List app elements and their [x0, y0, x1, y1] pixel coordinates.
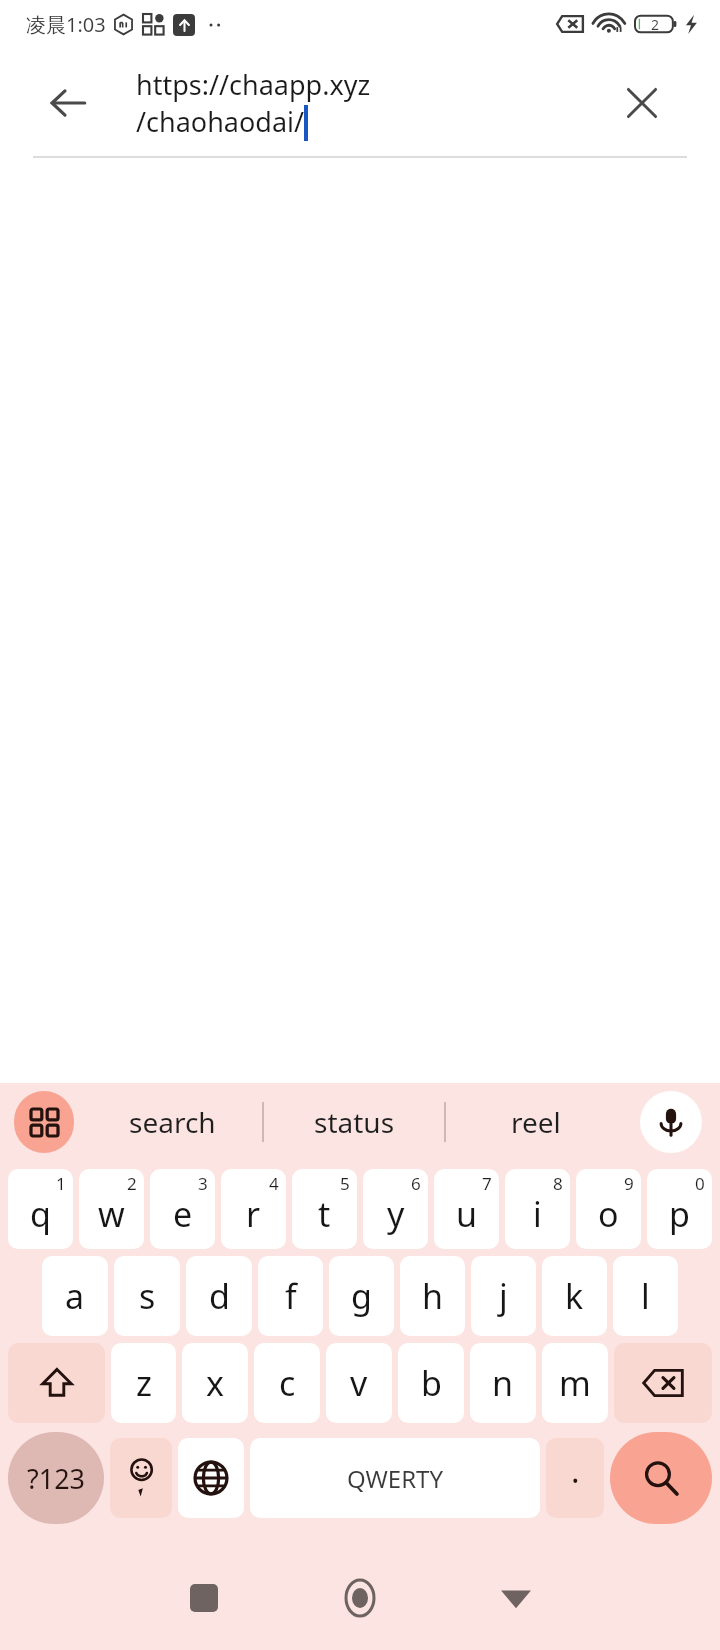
- button[interactable]: Search: [610, 1432, 712, 1524]
- staticText: n: [492, 1360, 514, 1406]
- button[interactable]: g: [329, 1256, 394, 1336]
- staticText: e: [173, 1191, 193, 1237]
- staticText: w: [98, 1191, 125, 1237]
- staticText: v: [350, 1360, 368, 1406]
- staticText: reel: [511, 1103, 561, 1141]
- button[interactable]: reel: [446, 1083, 626, 1161]
- button[interactable]: Home: [322, 1560, 398, 1636]
- staticText: p: [669, 1191, 690, 1237]
- button[interactable]: n: [470, 1343, 536, 1423]
- staticText: 1: [56, 1172, 66, 1195]
- button[interactable]: j: [471, 1256, 536, 1336]
- staticText: b: [421, 1360, 442, 1406]
- staticText: 3: [198, 1172, 208, 1195]
- staticText: z: [136, 1360, 152, 1406]
- staticText: 9: [624, 1172, 634, 1195]
- staticText: 8: [553, 1172, 563, 1195]
- staticText: h: [422, 1273, 444, 1319]
- staticText: i: [533, 1191, 542, 1237]
- button[interactable]: search: [82, 1083, 262, 1161]
- button[interactable]: Back: [478, 1560, 554, 1636]
- staticText: f: [285, 1273, 297, 1319]
- staticText: 2: [651, 15, 660, 34]
- staticText: g: [351, 1273, 372, 1319]
- button[interactable]: s: [114, 1256, 180, 1336]
- button[interactable]: h: [400, 1256, 465, 1336]
- staticText: status: [314, 1103, 395, 1141]
- button[interactable]: k: [542, 1256, 607, 1336]
- button[interactable]: ?123: [8, 1432, 104, 1524]
- button[interactable]: Shift: [8, 1343, 105, 1423]
- button[interactable]: r: [221, 1169, 286, 1249]
- staticText: .: [571, 1449, 580, 1493]
- staticText: s: [139, 1273, 156, 1319]
- staticText: o: [598, 1191, 619, 1237]
- button[interactable]: d: [186, 1256, 252, 1336]
- staticText: c: [279, 1360, 296, 1406]
- staticText: r: [246, 1191, 261, 1237]
- staticText: y: [387, 1191, 405, 1237]
- button[interactable]: .: [546, 1438, 604, 1518]
- button[interactable]: Emoji: [110, 1438, 172, 1518]
- button[interactable]: t: [292, 1169, 357, 1249]
- staticText: a: [65, 1273, 85, 1319]
- button[interactable]: i: [505, 1169, 570, 1249]
- button[interactable]: Back: [36, 71, 100, 135]
- staticText: l: [641, 1273, 650, 1319]
- staticText: q: [30, 1191, 51, 1237]
- button[interactable]: f: [258, 1256, 323, 1336]
- button[interactable]: Keyboard apps: [14, 1091, 74, 1153]
- button[interactable]: v: [326, 1343, 392, 1423]
- button[interactable]: b: [398, 1343, 464, 1423]
- button[interactable]: y: [363, 1169, 428, 1249]
- button[interactable]: u: [434, 1169, 499, 1249]
- button[interactable]: m: [542, 1343, 608, 1423]
- staticText: 0: [695, 1172, 705, 1195]
- staticText: 凌晨1:03: [26, 11, 106, 38]
- button[interactable]: a: [42, 1256, 108, 1336]
- button[interactable]: Clear: [612, 73, 672, 133]
- staticText: 4: [269, 1172, 279, 1195]
- staticText: 5: [340, 1172, 350, 1195]
- staticText: /chaohaodai/: [136, 103, 305, 140]
- button[interactable]: Recents: [166, 1560, 242, 1636]
- button[interactable]: p: [647, 1169, 712, 1249]
- button[interactable]: l: [613, 1256, 678, 1336]
- staticText: t: [318, 1191, 331, 1237]
- button[interactable]: Backspace: [614, 1343, 712, 1423]
- button[interactable]: z: [111, 1343, 176, 1423]
- staticText: ?123: [27, 1460, 86, 1497]
- staticText: search: [129, 1103, 216, 1141]
- staticText: m: [559, 1360, 591, 1406]
- button[interactable]: c: [254, 1343, 320, 1423]
- staticText: k: [565, 1273, 584, 1319]
- staticText: QWERTY: [347, 1462, 444, 1495]
- staticText: j: [499, 1273, 508, 1319]
- staticText: u: [456, 1191, 478, 1237]
- staticText: 7: [482, 1172, 492, 1195]
- button[interactable]: q: [8, 1169, 73, 1249]
- button[interactable]: Change keyboard language: [178, 1438, 244, 1518]
- button[interactable]: w: [79, 1169, 144, 1249]
- button[interactable]: status: [264, 1083, 444, 1161]
- button[interactable]: Voice input: [640, 1091, 702, 1153]
- button[interactable]: e: [150, 1169, 215, 1249]
- staticText: d: [209, 1273, 230, 1319]
- staticText: https://chaapp.xyz: [136, 66, 371, 103]
- staticText: 2: [127, 1172, 137, 1195]
- staticText: 6: [411, 1172, 421, 1195]
- button[interactable]: o: [576, 1169, 641, 1249]
- button[interactable]: QWERTY: [250, 1438, 540, 1518]
- button[interactable]: x: [182, 1343, 248, 1423]
- staticText: x: [206, 1360, 224, 1406]
